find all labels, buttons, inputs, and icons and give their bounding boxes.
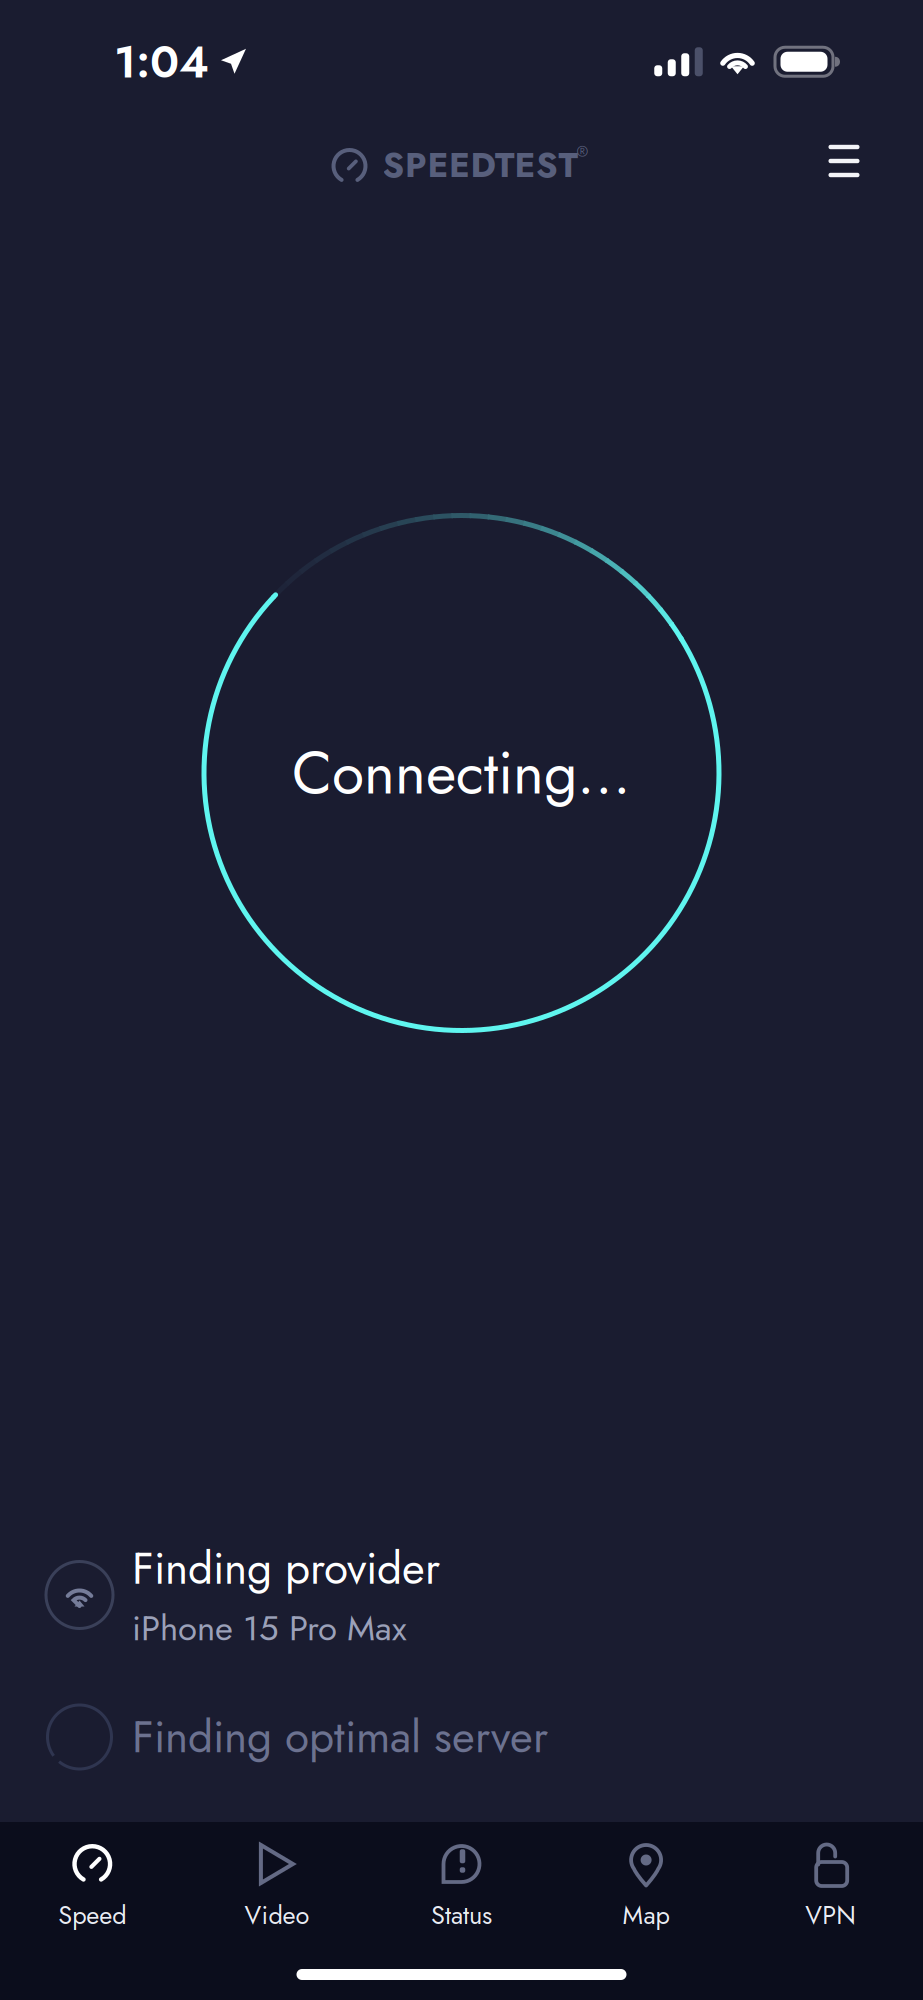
staticText: 1:04 bbox=[114, 29, 209, 94]
staticText: iPhone 15 Pro Max bbox=[132, 1603, 407, 1653]
button[interactable]: Status bbox=[369, 1842, 554, 1938]
staticText: ® bbox=[576, 141, 588, 162]
staticText: Finding provider bbox=[132, 1537, 440, 1600]
staticText: Speed bbox=[58, 1897, 126, 1934]
staticText: Status bbox=[431, 1897, 492, 1934]
staticText: Connecting... bbox=[292, 731, 631, 815]
button[interactable]: Video bbox=[185, 1842, 369, 1938]
staticText: VPN bbox=[805, 1897, 856, 1934]
button[interactable]: Map bbox=[554, 1842, 738, 1938]
staticText: Video bbox=[244, 1897, 309, 1934]
staticText: Finding optimal server bbox=[132, 1705, 548, 1769]
button[interactable]: VPN bbox=[738, 1842, 923, 1938]
button[interactable]: Menu bbox=[802, 119, 886, 203]
staticText: Map bbox=[623, 1897, 670, 1934]
button[interactable]: Speed bbox=[0, 1842, 185, 1938]
staticText: SPEEDTEST bbox=[382, 140, 577, 190]
